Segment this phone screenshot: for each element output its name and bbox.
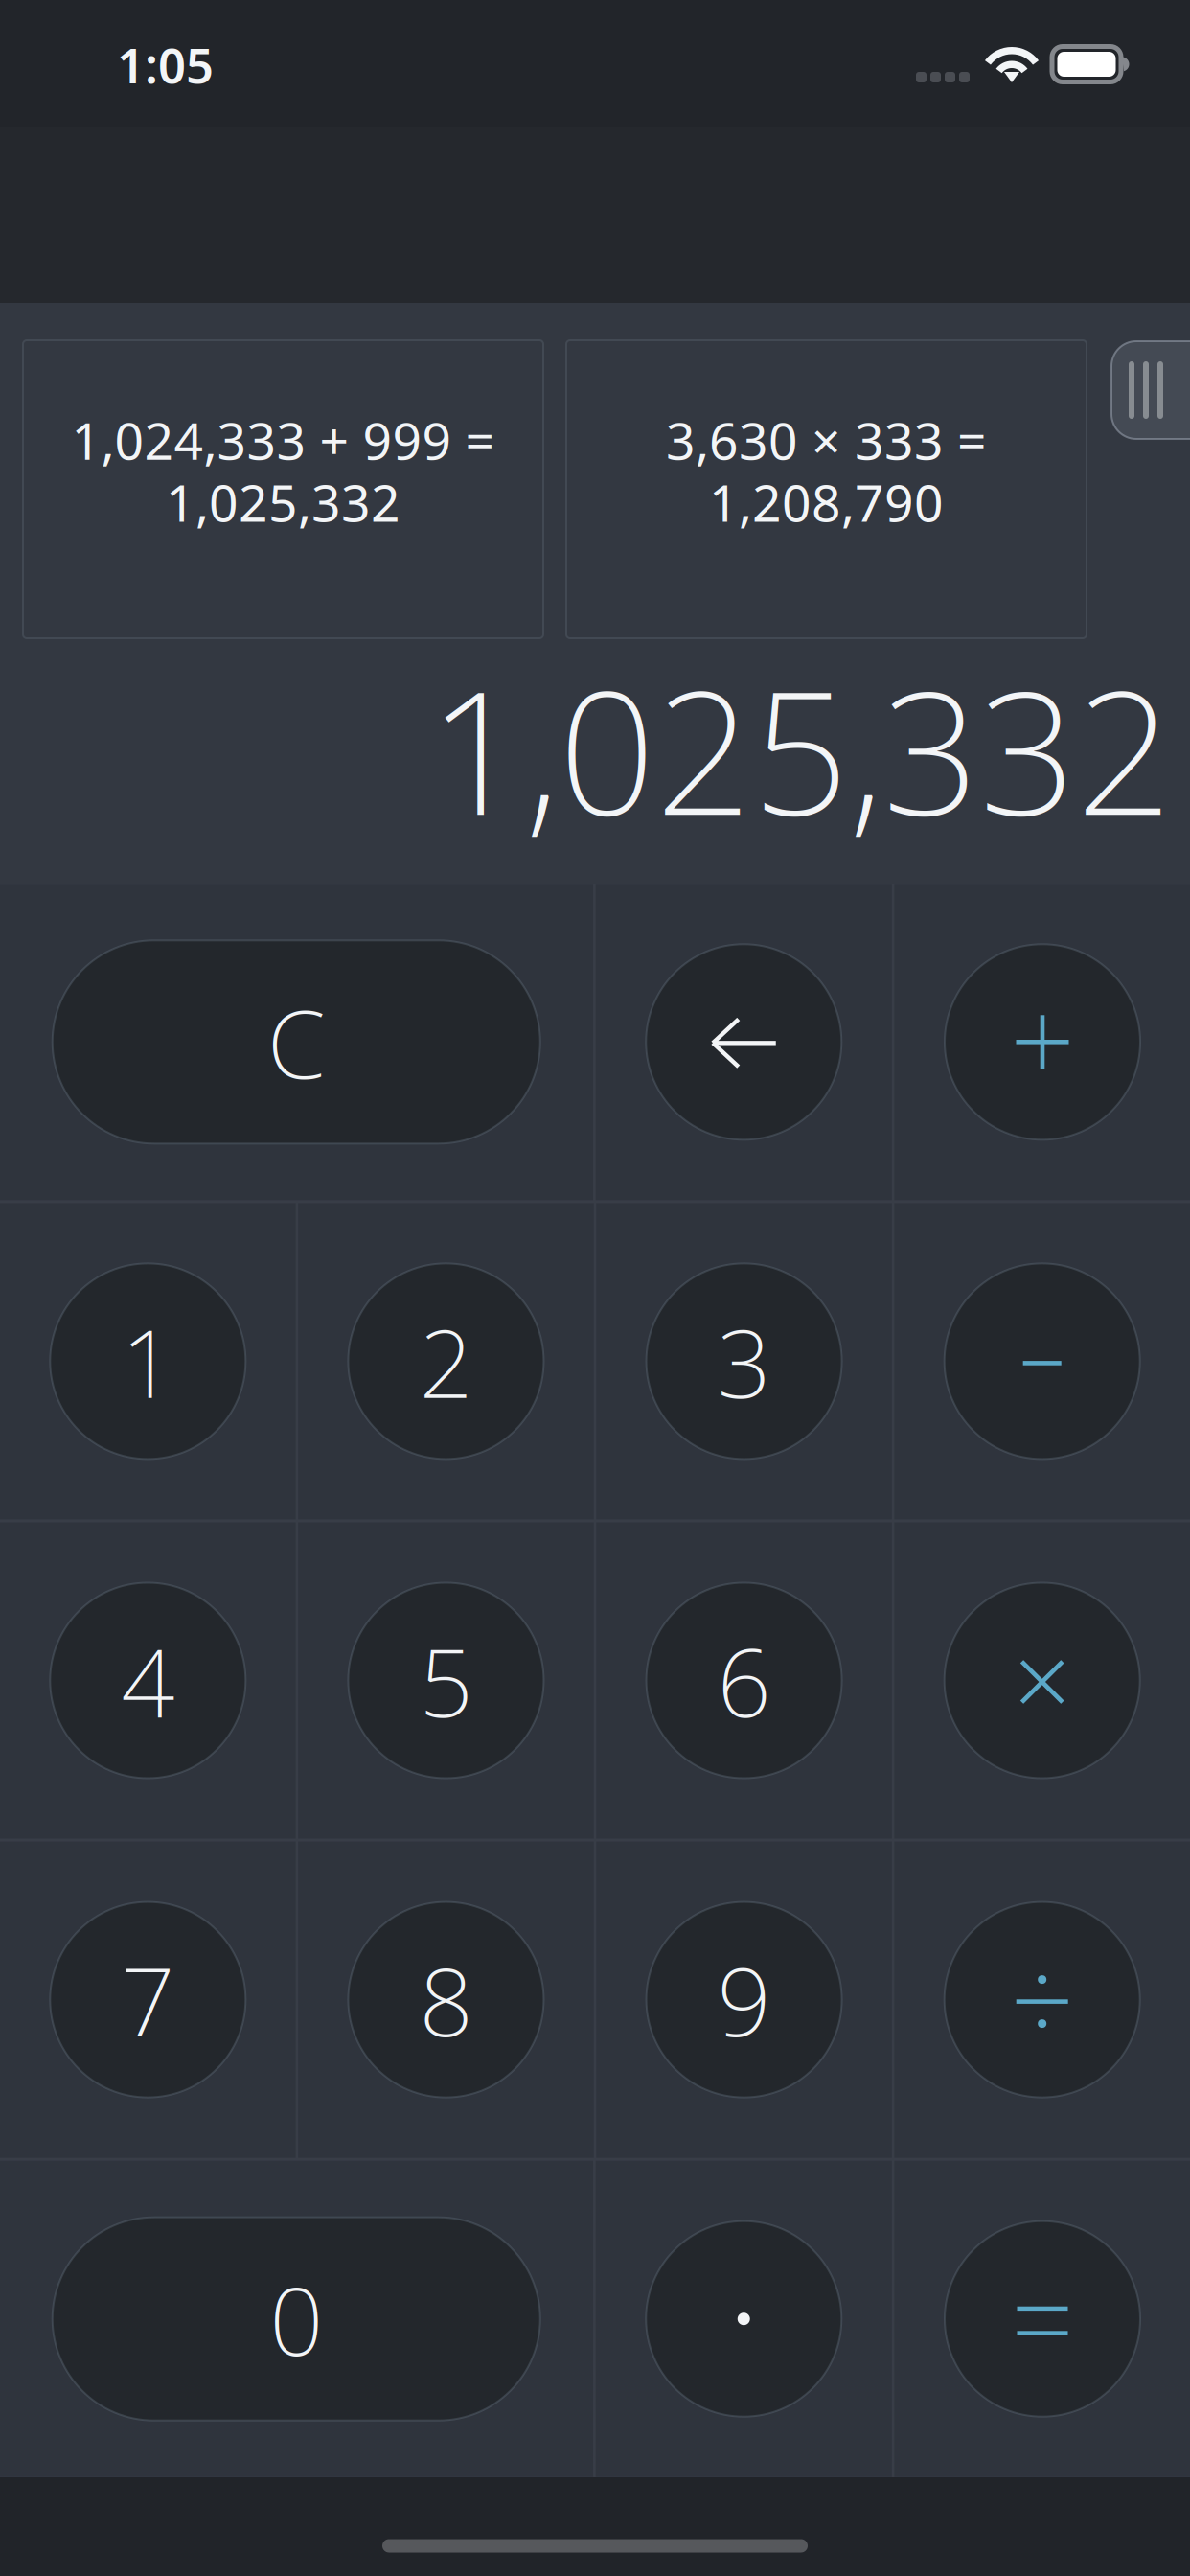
staticText: 6	[717, 1618, 771, 1743]
button[interactable]: Add	[945, 944, 1140, 1140]
button[interactable]: History	[1111, 341, 1190, 439]
button[interactable]: 2	[348, 1263, 544, 1459]
staticText: 1,025,332	[166, 468, 400, 536]
staticText: 1,024,333 + 999 =	[71, 406, 495, 474]
button[interactable]: 1	[50, 1263, 246, 1459]
staticText: 5	[419, 1618, 473, 1743]
button[interactable]: Multiply	[944, 1583, 1140, 1778]
button[interactable]: Decimal point	[646, 2221, 841, 2417]
button[interactable]: Equals	[945, 2221, 1140, 2417]
button[interactable]: 0	[53, 2217, 540, 2420]
staticText: 8	[419, 1937, 473, 2062]
staticText: 2	[419, 1298, 473, 1424]
button[interactable]: 8	[348, 1902, 544, 2097]
staticText: 7	[121, 1937, 175, 2062]
button[interactable]: 3	[646, 1263, 842, 1459]
staticText: C	[267, 979, 326, 1105]
button[interactable]: 3,630 × 333 =	[566, 340, 1087, 638]
button[interactable]: 7	[50, 1902, 246, 2097]
staticText: 3	[717, 1298, 771, 1424]
staticText: 1:05	[117, 32, 214, 97]
button[interactable]: Delete	[646, 944, 841, 1140]
button[interactable]: 4	[50, 1583, 246, 1778]
staticText: 1,025,332	[428, 636, 1173, 862]
staticText: 4	[121, 1618, 175, 1743]
button[interactable]: Divide	[944, 1902, 1140, 2097]
button[interactable]: 5	[348, 1583, 544, 1778]
button[interactable]: C	[53, 940, 540, 1144]
staticText: 1	[121, 1298, 175, 1424]
staticText: 1,208,790	[709, 468, 944, 536]
button[interactable]: Subtract	[944, 1263, 1140, 1459]
button[interactable]: 9	[646, 1902, 842, 2097]
staticText: 0	[269, 2256, 323, 2382]
button[interactable]: 1,024,333 + 999 =	[23, 340, 543, 638]
staticText: 9	[717, 1937, 771, 2062]
button[interactable]: 6	[646, 1583, 842, 1778]
staticText: 3,630 × 333 =	[666, 406, 987, 474]
